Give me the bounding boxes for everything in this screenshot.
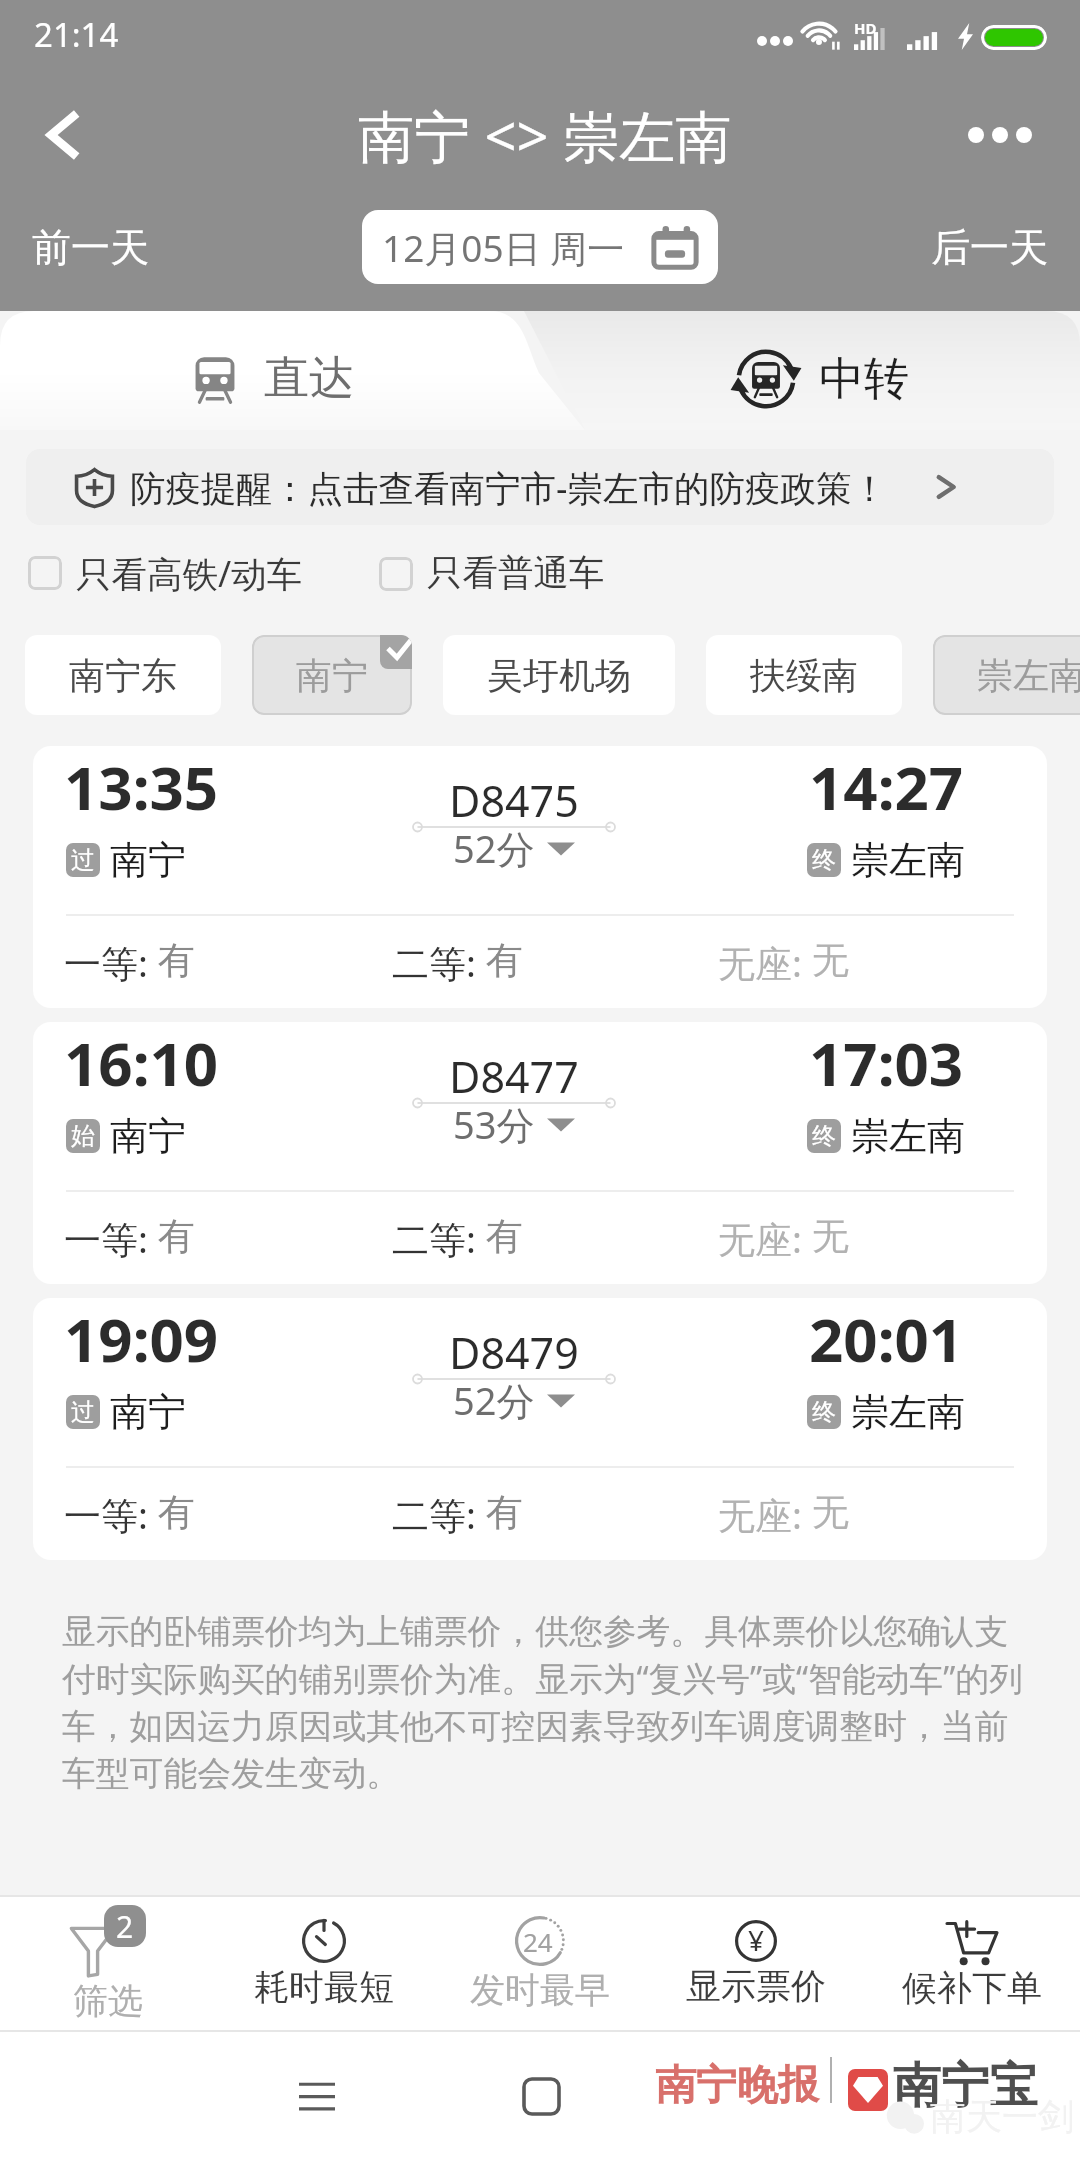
staticText: 12月05日 周一 [382,222,625,273]
staticText: 无座: [718,1489,812,1540]
button[interactable]: 24 [432,1897,648,2030]
button[interactable]: 只看高铁/动车 [18,543,313,603]
staticText: 一等: [64,937,158,988]
button[interactable]: 2 [0,1897,216,2030]
button[interactable]: Back [20,90,110,180]
button[interactable]: 前一天 [14,211,167,284]
staticText: 崇左南 [851,1112,965,1160]
staticText: 一等: [64,1489,158,1540]
button[interactable]: 扶绥南 [706,635,902,715]
staticText: 崇左南 [851,836,965,884]
staticText: 候补下单 [902,1966,1042,2010]
button[interactable]: 16:10 [33,1022,1047,1284]
staticText: 二等: [392,937,486,988]
staticText: D8475 [449,771,579,830]
staticText: 耗时最短 [254,1965,394,2009]
staticText: 只看高铁/动车 [76,549,303,597]
staticText: 过 [71,1397,95,1427]
staticText: 2 [116,1906,134,1947]
button[interactable]: 后一天 [913,211,1066,284]
staticText: 二等: [392,1489,486,1540]
staticText: 前一天 [32,223,149,272]
staticText: 南宁晚报 [655,2060,819,2112]
staticText: 南宁东 [69,653,177,698]
staticText: 无 [812,1489,849,1536]
staticText: 53分 [453,1098,535,1150]
staticText: 南宁宝 [893,2056,1037,2116]
staticText: 南天一剑 [930,2094,1074,2139]
staticText: 吴圩机场 [487,653,631,698]
staticText: 南宁 [110,1112,186,1160]
staticText: 有 [158,1489,195,1536]
button[interactable]: 19:09 [33,1298,1047,1560]
button[interactable]: Home [496,2051,586,2141]
staticText: 有 [158,1213,195,1260]
staticText: 筛选 [73,1979,143,2023]
staticText: 南宁 [110,836,186,884]
staticText: D8479 [449,1323,579,1382]
staticText: 17:03 [809,1022,964,1104]
button[interactable]: More options [946,95,1066,175]
staticText: 14:27 [809,746,964,828]
button[interactable]: 只看普通车 [369,545,615,602]
staticText: 二等: [392,1213,486,1264]
button[interactable]: 崇左南 [933,635,1080,715]
button[interactable]: 耗时最短 [216,1897,432,2030]
button[interactable]: Recent apps [272,2051,362,2141]
button[interactable]: 吴圩机场 [443,635,675,715]
staticText: 24 [523,1924,553,1959]
staticText: 无座: [718,937,812,988]
staticText: 中转 [819,351,909,408]
button[interactable]: 防疫提醒：点击查看南宁市-崇左市的防疫政策！ [26,449,1054,525]
staticText: 防疫提醒：点击查看南宁市-崇左市的防疫政策！ [130,463,887,511]
staticText: ¥ [748,1921,765,1959]
staticText: 52分 [453,822,535,874]
staticText: 16:10 [64,1022,219,1104]
staticText: 19:09 [64,1298,219,1380]
staticText: 过 [71,845,95,875]
button[interactable]: 南宁东 [25,635,221,715]
staticText: 20:01 [809,1298,964,1380]
staticText: 显示的卧铺票价均为上铺票价，供您参考。具体票价以您确认支付时实际购买的铺别票价为… [62,1610,1024,1795]
staticText: HD [854,18,877,38]
button[interactable]: 南宁 [252,635,412,715]
staticText: 无 [812,1213,849,1260]
staticText: 无 [812,937,849,984]
staticText: 13:35 [64,746,219,828]
button[interactable]: ¥ [648,1897,864,2030]
staticText: 有 [158,937,195,984]
button[interactable]: 中转 [524,311,1080,430]
staticText: 有 [486,937,523,984]
staticText: 扶绥南 [750,653,858,698]
staticText: 有 [486,1489,523,1536]
staticText: 显示票价 [686,1964,826,2008]
button[interactable]: 13:35 [33,746,1047,1008]
staticText: 崇左南 [851,1388,965,1436]
button[interactable]: 候补下单 [864,1897,1080,2030]
staticText: 52分 [453,1374,535,1426]
staticText: D8477 [449,1047,579,1106]
staticText: 有 [486,1213,523,1260]
staticText: 终 [812,1397,836,1427]
staticText: 南宁 <> 崇左南 [358,97,732,173]
button[interactable]: 直达 [0,311,585,430]
staticText: 南宁 [110,1388,186,1436]
staticText: 只看普通车 [427,551,605,596]
staticText: 一等: [64,1213,158,1264]
staticText: 终 [812,845,836,875]
staticText: 发时最早 [470,1968,610,2012]
staticText: 始 [71,1121,95,1151]
staticText: 后一天 [931,223,1048,272]
button[interactable]: 12月05日 周一 [362,210,718,284]
staticText: 无座: [718,1213,812,1264]
staticText: 南宁 [296,653,368,698]
staticText: 直达 [264,350,354,407]
staticText: 21:14 [34,12,119,57]
staticText: 终 [812,1121,836,1151]
staticText: 崇左南 [977,653,1080,698]
